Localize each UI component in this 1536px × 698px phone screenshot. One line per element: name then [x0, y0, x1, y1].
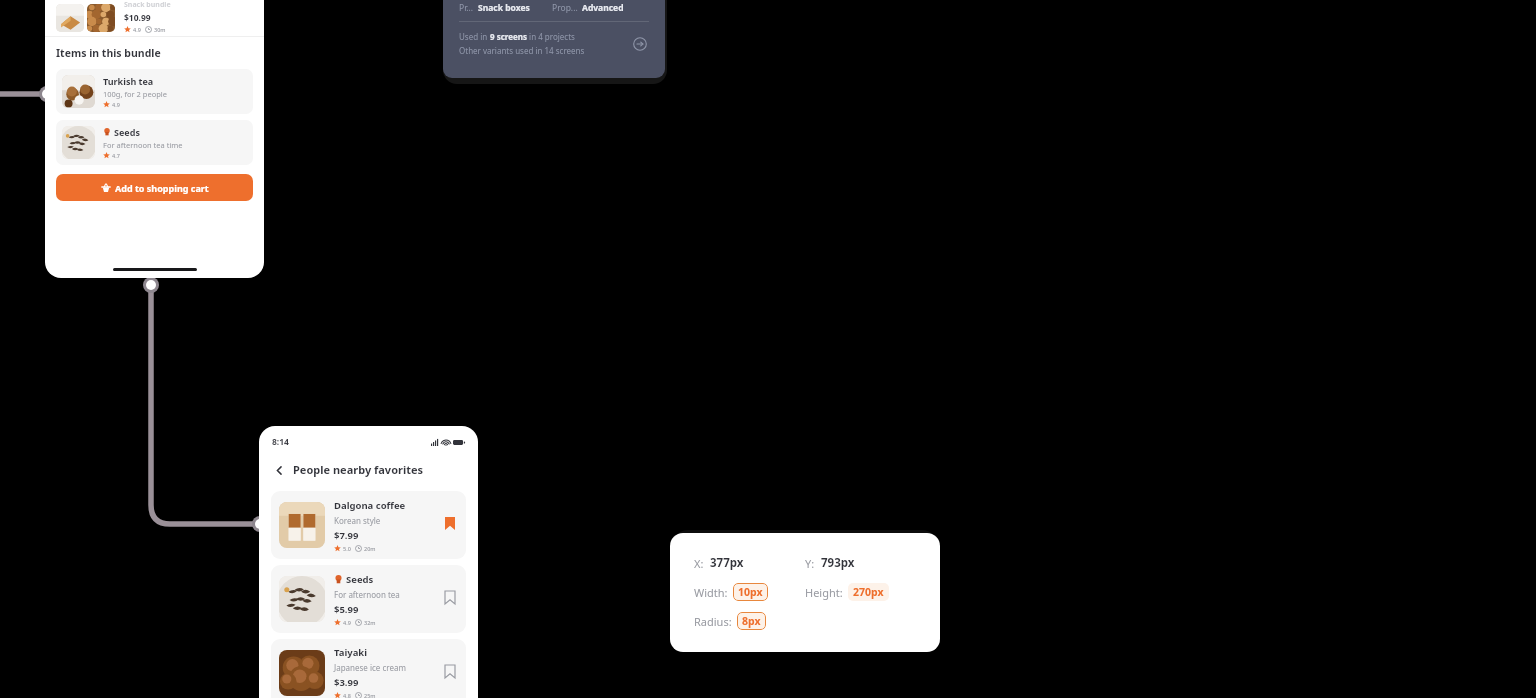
- staticText: $10.99: [124, 12, 151, 24]
- button[interactable]: Bookmark: [442, 591, 458, 607]
- button[interactable]: Remove bookmark: [442, 517, 458, 533]
- button[interactable]: Bookmark: [442, 665, 458, 681]
- button[interactable]: Taiyaki: [271, 639, 466, 698]
- staticText: Snack boxes: [478, 2, 530, 14]
- button[interactable]: Pr...: [459, 2, 530, 14]
- button[interactable]: Dalgona coffee: [271, 491, 466, 559]
- staticText: 793px: [821, 555, 855, 571]
- staticText: 4.9: [112, 101, 120, 108]
- staticText: 4.9: [133, 26, 141, 33]
- staticText: Korean style: [334, 515, 381, 526]
- staticText: Add to shopping cart: [115, 182, 209, 194]
- staticText: Width:: [694, 585, 728, 600]
- staticText: Seeds: [346, 573, 374, 586]
- staticText: Pr...: [459, 2, 474, 14]
- staticText: 377px: [710, 555, 744, 571]
- staticText: Seeds: [114, 126, 140, 138]
- staticText: Turkish tea: [103, 75, 154, 87]
- staticText: $7.99: [334, 529, 359, 542]
- staticText: Snack bundle: [124, 0, 171, 10]
- staticText: $5.99: [334, 603, 359, 616]
- staticText: People nearby favorites: [293, 462, 424, 477]
- staticText: 25m: [364, 692, 376, 698]
- staticText: Height:: [805, 585, 843, 600]
- staticText: 32m: [364, 619, 376, 626]
- button[interactable]: 270px: [848, 583, 889, 601]
- staticText: 270px: [853, 585, 884, 599]
- button[interactable]: Back: [272, 463, 286, 477]
- staticText: 4.9: [343, 619, 351, 626]
- staticText: 10px: [738, 585, 763, 599]
- staticText: 8:14: [272, 436, 289, 448]
- staticText: Prop...: [552, 2, 578, 14]
- button[interactable]: 8px: [737, 612, 766, 630]
- staticText: For afternoon tea: [334, 589, 400, 600]
- staticText: 5.0: [343, 545, 351, 552]
- button[interactable]: Turkish tea: [56, 69, 253, 114]
- staticText: 30m: [154, 26, 166, 33]
- staticText: Japanese ice cream: [334, 662, 406, 673]
- staticText: Used in: [459, 31, 490, 42]
- staticText: Taiyaki: [334, 646, 368, 659]
- staticText: Items in this bundle: [56, 46, 161, 60]
- staticText: 4.7: [112, 152, 120, 159]
- button[interactable]: 10px: [733, 583, 768, 601]
- button[interactable]: Add to shopping cart: [56, 174, 253, 201]
- staticText: X:: [694, 556, 704, 571]
- staticText: Y:: [805, 556, 815, 571]
- staticText: Advanced: [582, 2, 624, 14]
- button[interactable]: Snack bundle: [45, 0, 264, 36]
- staticText: For afternoon tea time: [103, 140, 183, 150]
- button[interactable]: Open usages: [631, 35, 649, 53]
- staticText: Other variants used in 14 screens: [459, 45, 585, 56]
- staticText: 9 screens: [490, 31, 527, 42]
- button[interactable]: Seeds: [271, 565, 466, 633]
- staticText: 8px: [742, 614, 761, 628]
- staticText: 4.8: [343, 692, 351, 698]
- staticText: $3.99: [334, 676, 359, 689]
- staticText: in 4 projects: [527, 31, 575, 42]
- staticText: 100g, for 2 people: [103, 89, 168, 99]
- button[interactable]: Prop...: [552, 2, 624, 14]
- button[interactable]: Seeds: [56, 120, 253, 165]
- staticText: 20m: [364, 545, 376, 552]
- staticText: Dalgona coffee: [334, 499, 406, 512]
- staticText: Radius:: [694, 614, 732, 629]
